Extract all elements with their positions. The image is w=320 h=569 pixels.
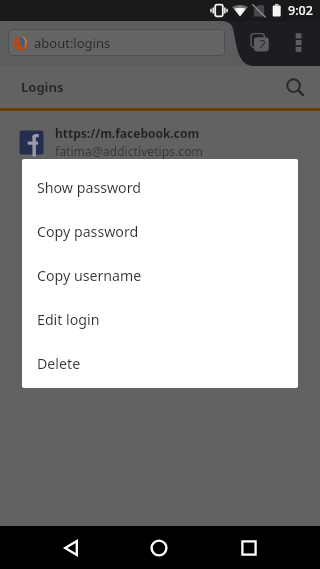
staticText: Edit login xyxy=(37,310,100,329)
button[interactable]: Copy password xyxy=(22,209,298,253)
staticText: Show password xyxy=(37,178,142,197)
button[interactable]: Edit login xyxy=(22,297,298,341)
staticText: Delete xyxy=(37,354,81,373)
button[interactable]: Back xyxy=(49,526,93,569)
button[interactable]: Delete xyxy=(22,341,298,385)
button[interactable]: Recent apps xyxy=(227,526,271,569)
button[interactable]: Show password xyxy=(22,165,298,209)
staticText: 9:02 xyxy=(288,2,313,19)
button[interactable]: Menu xyxy=(285,23,313,64)
button[interactable]: Copy username xyxy=(22,253,298,297)
staticText: 2 xyxy=(259,36,266,48)
staticText: https://m.facebook.com xyxy=(55,125,200,141)
button[interactable]: Search xyxy=(278,70,312,104)
button[interactable]: Tabs xyxy=(246,27,276,59)
staticText: about:logins xyxy=(34,34,111,52)
staticText: Copy password xyxy=(37,222,139,241)
staticText: Copy username xyxy=(37,266,142,285)
staticText: Logins xyxy=(21,78,64,96)
button[interactable]: Home xyxy=(137,526,181,569)
button[interactable]: https://m.facebook.com xyxy=(0,111,320,167)
button[interactable]: about:logins xyxy=(8,29,225,56)
staticText: fatima@addictivetips.com xyxy=(55,143,203,160)
